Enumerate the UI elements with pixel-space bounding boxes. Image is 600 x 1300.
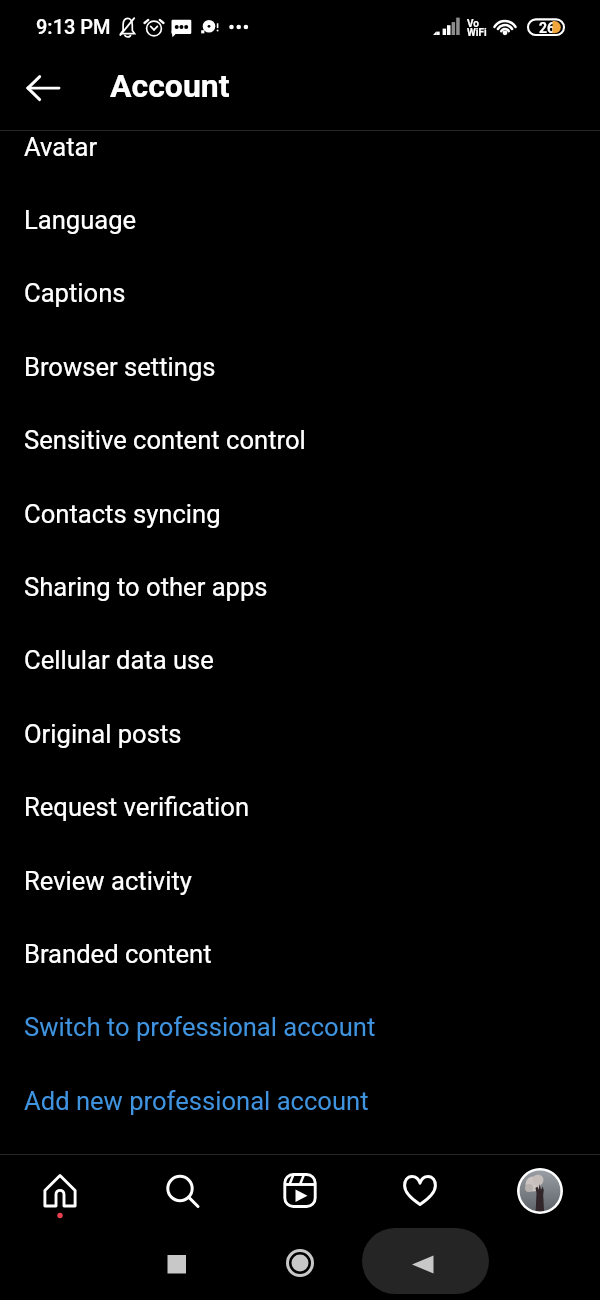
staticText: Browser settings: [24, 352, 216, 382]
staticText: Review activity: [24, 866, 192, 896]
staticText: Cellular data use: [24, 645, 214, 675]
staticText: Sensitive content control: [24, 425, 306, 455]
button[interactable]: Back: [18, 64, 67, 113]
staticText: Branded content: [24, 939, 212, 969]
button[interactable]: Cellular data use: [0, 623, 600, 696]
button[interactable]: Review activity: [0, 844, 600, 917]
staticText: Captions: [24, 278, 126, 308]
staticText: Sharing to other apps: [24, 572, 268, 602]
button[interactable]: Request verification: [0, 770, 600, 843]
staticText: 9:13 PM: [36, 15, 111, 38]
staticText: Switch to professional account: [24, 1012, 376, 1042]
button[interactable]: Contacts syncing: [0, 477, 600, 550]
button[interactable]: Profile: [480, 1156, 600, 1228]
button[interactable]: Switch to professional account: [0, 990, 600, 1063]
button[interactable]: Captions: [0, 256, 600, 329]
button[interactable]: Add new professional account: [0, 1064, 600, 1137]
staticText: Account: [110, 67, 230, 105]
staticText: WiFi: [467, 27, 487, 39]
button[interactable]: Likes: [360, 1156, 480, 1228]
button[interactable]: Recents: [146, 1233, 206, 1293]
staticText: Add new professional account: [24, 1086, 369, 1116]
staticText: Language: [24, 205, 137, 235]
staticText: Contacts syncing: [24, 499, 221, 529]
button[interactable]: Avatar: [0, 110, 600, 183]
button[interactable]: Language: [0, 183, 600, 256]
button[interactable]: Reels: [240, 1156, 360, 1228]
staticText: Avatar: [24, 132, 98, 162]
staticText: 26: [539, 20, 556, 36]
staticText: Request verification: [24, 792, 250, 822]
staticText: Vo: [467, 18, 479, 30]
button[interactable]: Home: [270, 1233, 330, 1293]
button[interactable]: Home: [0, 1156, 120, 1228]
button[interactable]: Browser settings: [0, 330, 600, 403]
staticText: Original posts: [24, 719, 182, 749]
button[interactable]: Branded content: [0, 917, 600, 990]
button[interactable]: Back: [362, 1228, 489, 1294]
button[interactable]: Sensitive content control: [0, 403, 600, 476]
button[interactable]: Sharing to other apps: [0, 550, 600, 623]
button[interactable]: Search: [120, 1156, 240, 1228]
button[interactable]: Original posts: [0, 697, 600, 770]
